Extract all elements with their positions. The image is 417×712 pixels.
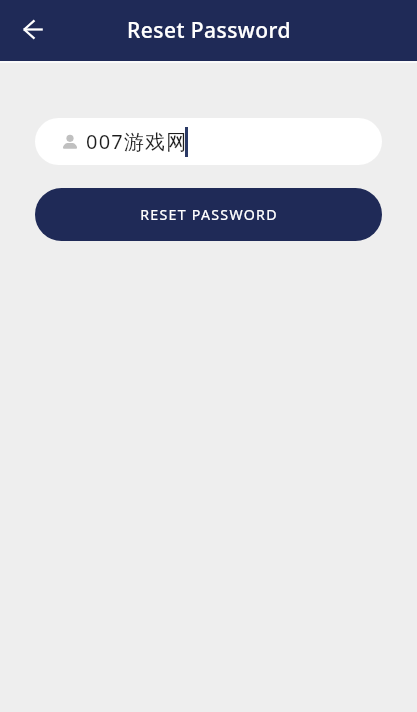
button[interactable]: RESET PASSWORD: [35, 188, 382, 241]
staticText: Reset Password: [127, 16, 291, 45]
button[interactable]: Back: [10, 8, 55, 53]
staticText: 007游戏网: [86, 128, 188, 155]
button[interactable]: 007游戏网: [35, 118, 382, 165]
staticText: RESET PASSWORD: [140, 205, 278, 224]
